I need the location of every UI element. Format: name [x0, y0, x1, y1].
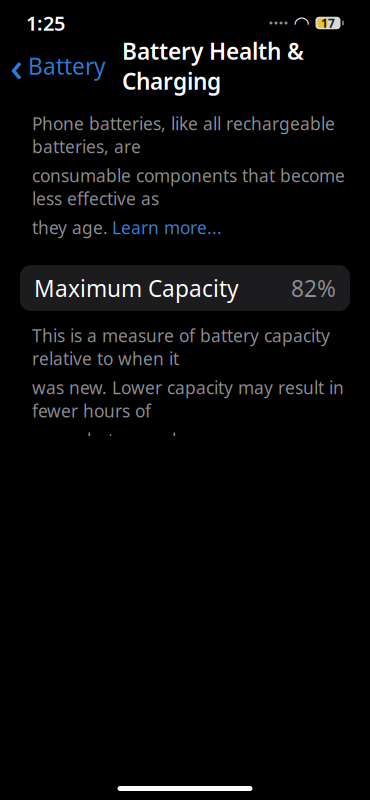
staticText: consumable components that become less e…: [32, 164, 345, 210]
staticText: 1:25: [26, 10, 65, 36]
staticText: Battery: [28, 51, 106, 81]
staticText: Maximum Capacity: [34, 273, 239, 303]
staticText: they age.: [32, 216, 108, 239]
button[interactable]: Learn more...: [112, 216, 222, 239]
button[interactable]: ‹: [0, 46, 112, 86]
staticText: ◠: [294, 12, 308, 34]
staticText: Battery Health & Charging: [122, 36, 304, 96]
staticText: This is a measure of battery capacity re…: [32, 324, 330, 370]
staticText: To reduce battery ageing, iPhone learns …: [32, 765, 304, 800]
staticText: ‹: [10, 39, 23, 92]
staticText: usage between charges.: [32, 428, 234, 451]
staticText: Phone batteries, like all rechargeable b…: [32, 112, 335, 158]
staticText: was new. Lower capacity may result in fe…: [32, 376, 344, 422]
staticText: Learn more...: [112, 216, 222, 239]
button[interactable]: Maximum Capacity: [20, 265, 350, 311]
staticText: 82%: [291, 273, 336, 303]
staticText: 17: [321, 15, 335, 31]
